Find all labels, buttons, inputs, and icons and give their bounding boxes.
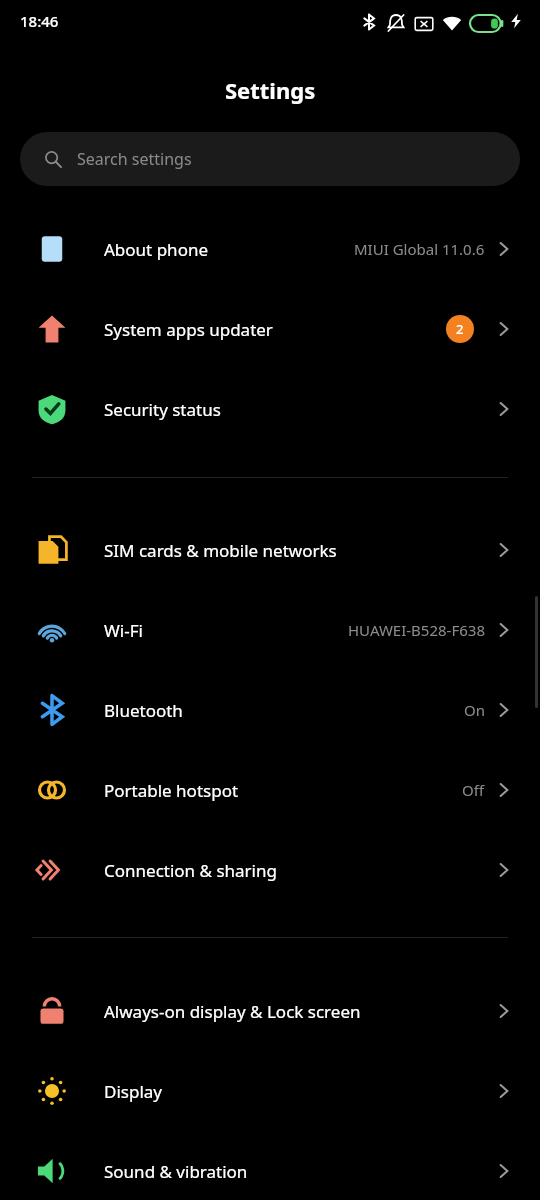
button[interactable]: Bluetooth <box>0 670 540 750</box>
staticText: System apps updater <box>104 318 273 341</box>
button[interactable]: About phone <box>0 209 540 289</box>
button[interactable]: Sound & vibration <box>0 1131 540 1200</box>
other: Sound & vibration <box>492 1159 516 1183</box>
other: Portable hotspot <box>492 778 516 802</box>
staticText: On <box>464 700 485 720</box>
staticText: Display <box>104 1080 162 1103</box>
button[interactable]: Security status <box>0 369 540 449</box>
staticText: MIUI Global 11.0.6 <box>354 239 485 259</box>
staticText: Settings <box>225 75 316 105</box>
staticText: Portable hotspot <box>104 779 239 802</box>
other: Security status <box>492 397 516 421</box>
staticText: Always-on display & Lock screen <box>104 1000 361 1023</box>
other: Connection & sharing <box>492 858 516 882</box>
staticText: HUAWEI-B528-F638 <box>348 620 485 640</box>
staticText: Search settings <box>77 148 192 170</box>
other: SIM cards & mobile networks <box>492 538 516 562</box>
staticText: Sound & vibration <box>104 1160 248 1183</box>
staticText: Wi-Fi <box>104 619 143 642</box>
other: System apps updater <box>492 317 516 341</box>
button[interactable]: Always-on display & Lock screen <box>0 971 540 1051</box>
staticText: Off <box>462 780 485 800</box>
button[interactable]: Wi-Fi <box>0 590 540 670</box>
staticText: 2 <box>456 320 464 338</box>
button[interactable]: Search settings <box>20 132 520 186</box>
button[interactable]: System apps updater <box>0 289 540 369</box>
staticText: About phone <box>104 238 209 261</box>
other: Bluetooth <box>492 698 516 722</box>
staticText: Bluetooth <box>104 699 183 722</box>
other: About phone <box>492 237 516 261</box>
staticText: Security status <box>104 398 221 421</box>
button[interactable]: Connection & sharing <box>0 830 540 910</box>
other: Always-on display & Lock screen <box>492 999 516 1023</box>
staticText: 18:46 <box>20 11 59 31</box>
other: Display <box>492 1079 516 1103</box>
button[interactable]: Display <box>0 1051 540 1131</box>
button[interactable]: Portable hotspot <box>0 750 540 830</box>
staticText: SIM cards & mobile networks <box>104 539 337 562</box>
staticText: Connection & sharing <box>104 859 277 882</box>
other: Wi-Fi <box>492 618 516 642</box>
button[interactable]: SIM cards & mobile networks <box>0 510 540 590</box>
